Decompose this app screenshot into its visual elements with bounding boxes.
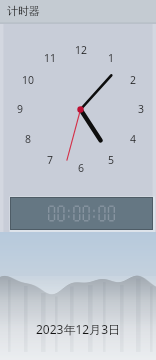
staticText: 9 [17, 102, 24, 116]
staticText: 6 [78, 161, 85, 175]
staticText: 2023年12月3日 [36, 321, 121, 337]
staticText: 4 [130, 132, 137, 146]
button[interactable]: 计时器 [0, 0, 156, 24]
staticText: 2 [130, 73, 137, 87]
staticText: 计时器 [7, 4, 40, 18]
staticText: 7 [47, 153, 54, 167]
staticText: 1 [108, 51, 115, 65]
staticText: 3 [138, 102, 145, 116]
staticText: 11 [44, 51, 57, 65]
staticText: 5 [108, 153, 115, 167]
staticText: 10 [22, 73, 35, 87]
staticText: 8 [25, 132, 32, 146]
staticText: 12 [75, 43, 88, 57]
